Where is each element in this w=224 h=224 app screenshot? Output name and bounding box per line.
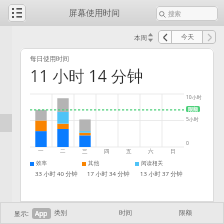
staticText: 10小时 xyxy=(186,94,202,101)
staticText: 17 小时 34 分钟 xyxy=(87,170,130,178)
staticText: 11 小时 14 分钟 xyxy=(30,65,144,87)
button[interactable]: 限额 xyxy=(179,209,192,217)
button[interactable]: 效率 xyxy=(30,160,82,178)
button[interactable]: 时间 xyxy=(119,209,132,217)
staticText: 显示: xyxy=(14,209,29,218)
button[interactable]: App xyxy=(35,209,48,218)
button[interactable]: 类别 xyxy=(54,209,67,217)
staticText: 五 xyxy=(126,148,132,155)
staticText: 限额 xyxy=(188,106,198,112)
staticText: 33 小时 40 分钟 xyxy=(35,170,78,178)
staticText: 13 小时 37 分钟 xyxy=(140,170,183,178)
staticText: 屏幕使用时间 xyxy=(69,8,120,19)
staticText: App xyxy=(35,209,48,218)
staticText: 限额 xyxy=(179,209,192,217)
button[interactable]: 其他 xyxy=(82,160,135,178)
staticText: 二 xyxy=(60,148,66,155)
staticText: 阅读相关 xyxy=(141,160,163,167)
button[interactable]: Previous xyxy=(158,30,171,44)
button[interactable]: 本周 xyxy=(134,33,153,42)
staticText: 今天 xyxy=(181,33,194,41)
button[interactable]: 阅读相关 xyxy=(135,160,188,178)
button[interactable]: 今天 xyxy=(172,30,202,44)
button[interactable]: Toggle sidebar xyxy=(8,4,26,22)
staticText: 三 xyxy=(82,148,88,155)
button[interactable]: 搜索 xyxy=(156,6,218,21)
staticText: 本周 xyxy=(134,34,147,42)
staticText: 类别 xyxy=(54,209,67,217)
staticText: 5小时 xyxy=(186,116,199,123)
staticText: 一 xyxy=(38,148,44,155)
staticText: 日 xyxy=(170,148,176,155)
staticText: 时间 xyxy=(119,209,132,217)
staticText: 效率 xyxy=(36,160,47,167)
staticText: 其他 xyxy=(88,160,99,167)
staticText: 四 xyxy=(104,148,110,155)
staticText: 0 xyxy=(186,140,189,147)
staticText: 每日使用时间 xyxy=(30,55,69,63)
staticText: 六 xyxy=(148,148,154,155)
staticText: 搜索 xyxy=(168,10,181,18)
button[interactable]: Next xyxy=(203,30,216,44)
